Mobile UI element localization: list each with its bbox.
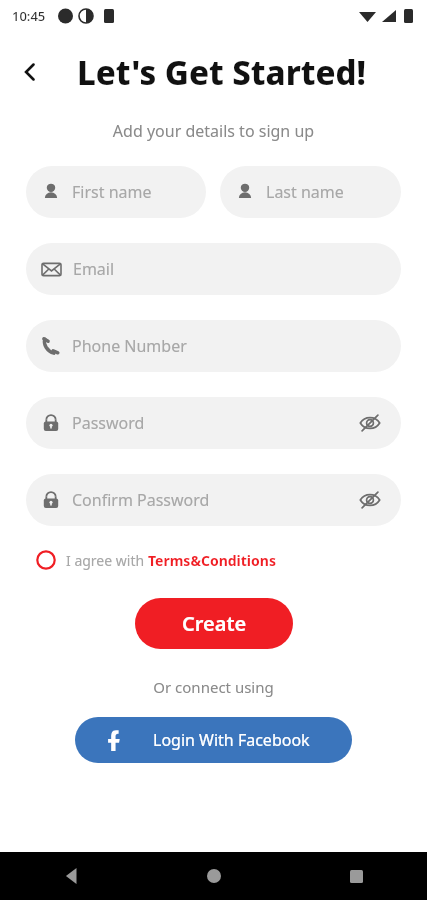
button[interactable]: Email bbox=[26, 243, 401, 295]
staticText: 10:45 bbox=[12, 7, 46, 25]
button[interactable]: Last name bbox=[220, 166, 401, 218]
staticText: I agree with bbox=[66, 551, 148, 570]
button[interactable]: I agree with bbox=[36, 550, 391, 570]
button[interactable]: Home bbox=[143, 852, 285, 900]
button[interactable]: Back bbox=[8, 50, 52, 94]
button[interactable]: First name bbox=[26, 166, 206, 218]
staticText: Terms&Conditions bbox=[148, 551, 276, 570]
staticText: Email bbox=[73, 258, 387, 280]
staticText: Phone Number bbox=[72, 335, 387, 357]
button[interactable]: Login With Facebook bbox=[75, 717, 352, 763]
button[interactable]: Back bbox=[0, 852, 143, 900]
staticText: Add your details to sign up bbox=[0, 120, 427, 142]
staticText: Login With Facebook bbox=[153, 729, 310, 751]
staticText: Password bbox=[72, 412, 353, 434]
button[interactable]: Confirm Password bbox=[26, 474, 401, 526]
button[interactable]: Password bbox=[26, 397, 401, 449]
button[interactable]: Show confirm password bbox=[353, 483, 387, 517]
button[interactable]: Phone Number bbox=[26, 320, 401, 372]
staticText: Let's Get Started! bbox=[77, 50, 366, 95]
staticText: Last name bbox=[266, 181, 387, 203]
staticText: Create bbox=[182, 610, 247, 637]
button[interactable]: Show password bbox=[353, 406, 387, 440]
staticText: Confirm Password bbox=[72, 489, 353, 511]
staticText: First name bbox=[72, 181, 192, 203]
button[interactable]: Recent apps bbox=[285, 852, 427, 900]
staticText: Or connect using bbox=[0, 677, 427, 697]
button[interactable]: Create bbox=[135, 598, 293, 649]
